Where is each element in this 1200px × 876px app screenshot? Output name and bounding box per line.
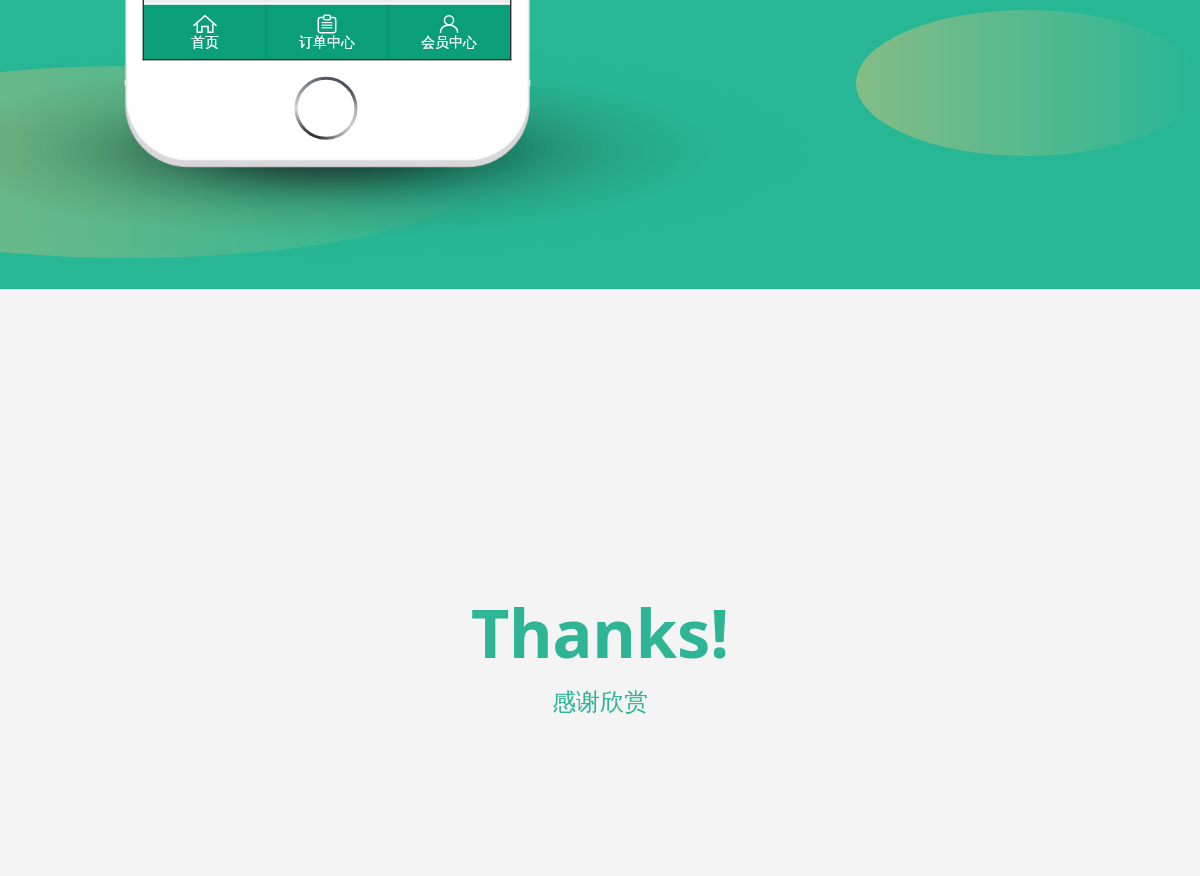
staticText: 订单中心 (299, 34, 355, 52)
button[interactable]: 首页 (144, 5, 266, 59)
staticText: 会员中心 (421, 34, 477, 52)
staticText: 首页 (191, 34, 219, 52)
staticText: Thanks! (471, 587, 730, 678)
button[interactable]: 订单中心 (266, 5, 388, 59)
staticText: 感谢欣赏 (552, 687, 648, 717)
button[interactable]: 会员中心 (388, 5, 510, 59)
